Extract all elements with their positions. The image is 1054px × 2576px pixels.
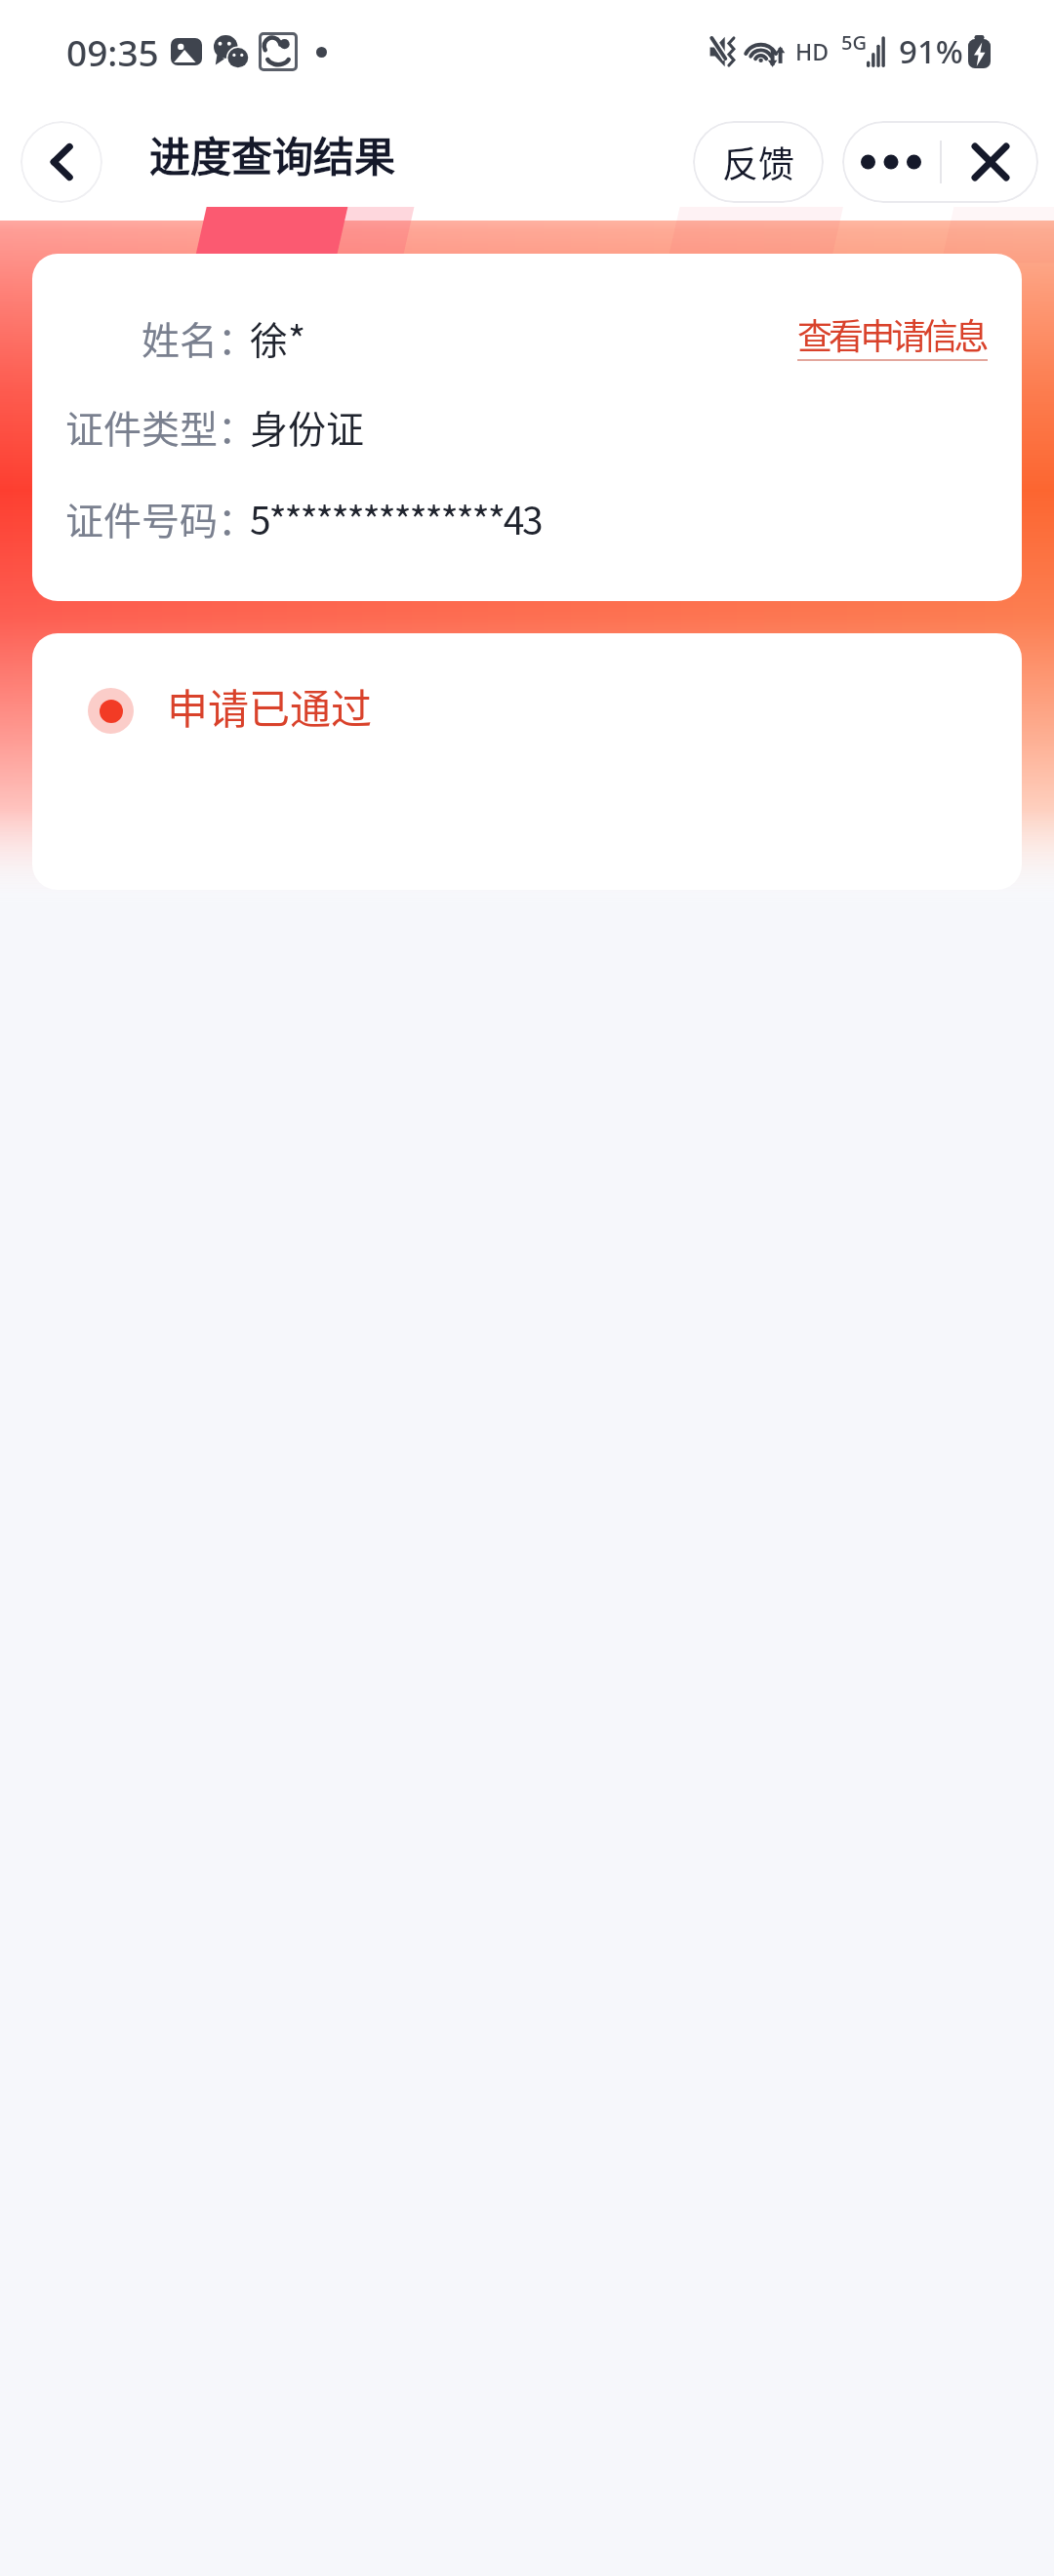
staticText: 徐* (250, 310, 306, 365)
staticText: 进度查询结果 (149, 124, 396, 183)
staticText: 09:35 (66, 27, 159, 76)
staticText: 身份证 (250, 399, 365, 454)
button[interactable]: 查看申请信息 (797, 308, 988, 361)
staticText: 证件号码： (65, 491, 257, 545)
staticText: 91% (899, 29, 963, 73)
button[interactable]: Close (942, 121, 1038, 203)
button[interactable]: Back (20, 121, 102, 203)
button[interactable]: 反馈 (693, 121, 824, 203)
staticText: 查看申请信息 (797, 308, 986, 359)
staticText: HD (795, 36, 830, 66)
staticText: 反馈 (722, 136, 794, 188)
staticText: 5G (841, 29, 867, 56)
staticText: 5***************43 (250, 491, 542, 545)
button[interactable]: More options (842, 121, 940, 203)
staticText: 申请已通过 (167, 676, 373, 736)
staticText: 姓名： (142, 310, 257, 365)
staticText: 证件类型： (65, 399, 257, 454)
button[interactable]: 申请已通过 (88, 681, 373, 741)
